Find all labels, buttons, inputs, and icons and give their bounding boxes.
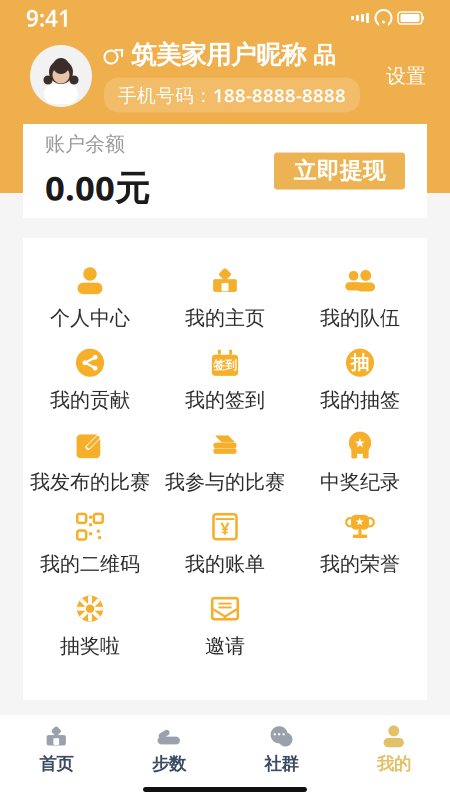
- staticText: 抽奖啦: [60, 634, 120, 658]
- staticText: 我的抽签: [320, 388, 400, 412]
- staticText: ★: [354, 435, 366, 450]
- staticText: 我的账单: [185, 552, 265, 576]
- staticText: 我的主页: [185, 306, 265, 330]
- staticText: 抽: [350, 351, 369, 374]
- button[interactable]: 我的贡献: [22, 338, 157, 420]
- button[interactable]: ¥: [157, 502, 292, 584]
- button[interactable]: ★: [292, 502, 427, 584]
- button[interactable]: 我的: [337, 723, 450, 775]
- staticText: 9:41: [26, 3, 71, 33]
- staticText: 我的: [377, 753, 411, 775]
- staticText: 我的贡献: [50, 388, 130, 412]
- staticText: 筑美家用户昵称: [131, 39, 306, 71]
- button[interactable]: 签到: [157, 338, 292, 420]
- staticText: 我的二维码: [40, 552, 140, 576]
- button[interactable]: 我的二维码: [22, 502, 157, 584]
- staticText: 立即提现: [293, 157, 385, 185]
- button[interactable]: 步数: [112, 723, 225, 775]
- staticText: 邀请: [205, 634, 245, 658]
- button[interactable]: 立即提现: [274, 152, 405, 189]
- button[interactable]: 个人中心: [22, 256, 157, 338]
- staticText: 设置: [386, 64, 426, 88]
- staticText: 首页: [39, 753, 73, 775]
- staticText: 个人中心: [50, 306, 130, 330]
- staticText: 手机号码：188-8888-8888: [118, 83, 346, 107]
- staticText: ★: [355, 515, 365, 528]
- staticText: 品: [313, 41, 336, 69]
- staticText: 我发布的比赛: [30, 470, 150, 494]
- button[interactable]: 抽奖啦: [22, 584, 157, 666]
- button[interactable]: 邀请: [157, 584, 292, 666]
- button[interactable]: 我的主页: [157, 256, 292, 338]
- button[interactable]: 抽: [292, 338, 427, 420]
- button[interactable]: 我发布的比赛: [22, 420, 157, 502]
- staticText: ¥: [220, 518, 229, 539]
- button[interactable]: 设置: [374, 56, 438, 96]
- staticText: 我的荣誉: [320, 552, 400, 576]
- button[interactable]: 我的队伍: [292, 256, 427, 338]
- staticText: 我的签到: [185, 388, 265, 412]
- button[interactable]: 我参与的比赛: [157, 420, 292, 502]
- staticText: 0.00元: [45, 164, 150, 210]
- staticText: 中奖纪录: [320, 470, 400, 494]
- staticText: 我参与的比赛: [165, 470, 285, 494]
- button[interactable]: 社群: [225, 723, 337, 775]
- staticText: 账户余额: [45, 132, 125, 156]
- staticText: 我的队伍: [320, 306, 400, 330]
- button[interactable]: ★: [292, 420, 427, 502]
- staticText: 签到: [213, 358, 237, 373]
- staticText: 步数: [152, 753, 186, 775]
- button[interactable]: 首页: [0, 723, 112, 775]
- staticText: 社群: [264, 753, 298, 775]
